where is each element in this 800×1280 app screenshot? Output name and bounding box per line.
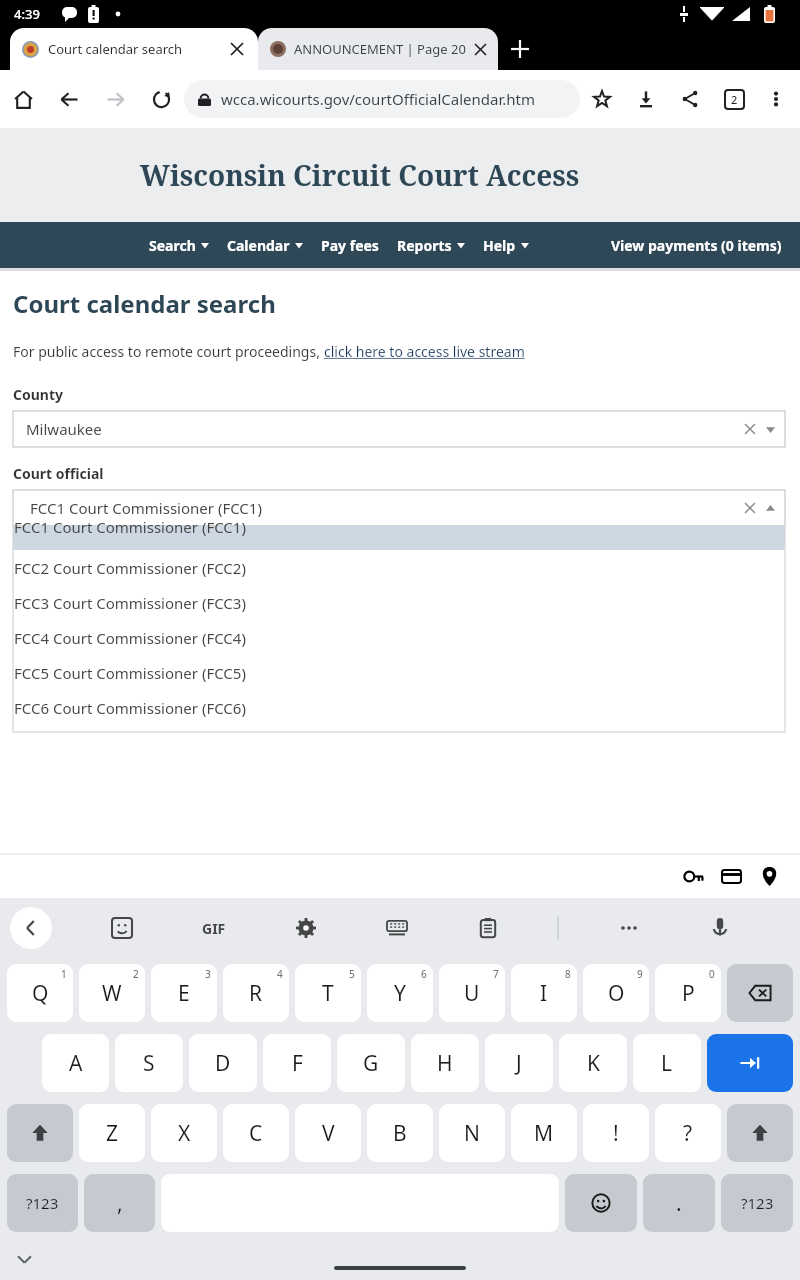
staticText: Help <box>483 236 516 255</box>
staticText: X <box>178 1119 191 1148</box>
button[interactable]: FCC5 Court Commissioner (FCC5) <box>13 655 785 690</box>
button[interactable]: View payments (0 items) <box>605 228 788 263</box>
button[interactable]: wcca.wicourts.gov/courtOfficialCalendar.… <box>184 80 580 118</box>
button[interactable]: Addresses <box>750 857 788 895</box>
button[interactable]: ! <box>583 1104 649 1162</box>
button[interactable]: Shift <box>727 1104 793 1162</box>
button[interactable]: Hide keyboard <box>8 1243 40 1275</box>
staticText: C <box>249 1119 263 1148</box>
staticText: I <box>540 979 548 1008</box>
button[interactable]: New tab <box>500 29 540 69</box>
button[interactable]: K <box>559 1034 627 1092</box>
button[interactable]: Search <box>140 227 218 264</box>
button[interactable]: Passwords <box>674 857 712 895</box>
staticText: For public access to remote court procee… <box>13 342 324 361</box>
button[interactable]: Settings <box>285 907 327 949</box>
staticText: . <box>676 1189 682 1218</box>
button[interactable]: D <box>189 1034 257 1092</box>
button[interactable]: Backspace <box>727 964 793 1022</box>
button[interactable]: Y <box>367 964 433 1022</box>
button[interactable]: U <box>439 964 505 1022</box>
button[interactable]: Court calendar search <box>10 28 258 70</box>
button[interactable]: P <box>655 964 721 1022</box>
staticText: , <box>117 1189 123 1218</box>
button[interactable]: Pay fees <box>312 227 388 264</box>
button[interactable]: R <box>223 964 289 1022</box>
button[interactable]: Next field <box>707 1034 793 1092</box>
button[interactable]: Home <box>0 76 46 122</box>
button[interactable]: Close tab <box>224 36 250 62</box>
button[interactable]: Payment methods <box>712 857 750 895</box>
button[interactable]: . <box>643 1174 715 1232</box>
button[interactable]: ANNOUNCEMENT | Page 20 <box>258 28 498 70</box>
staticText: 3 <box>205 967 211 981</box>
button[interactable]: GIF <box>192 906 236 950</box>
button[interactable]: Emoji <box>565 1174 637 1232</box>
button[interactable]: Q <box>7 964 73 1022</box>
button[interactable]: W <box>79 964 145 1022</box>
button[interactable]: FCC3 Court Commissioner (FCC3) <box>13 585 785 620</box>
button[interactable]: I <box>511 964 577 1022</box>
button[interactable]: FCC1 Court Commissioner (FCC1) <box>13 526 785 550</box>
button[interactable]: Shift <box>7 1104 73 1162</box>
button[interactable]: C <box>223 1104 289 1162</box>
button[interactable]: Help <box>474 227 538 264</box>
button[interactable]: T <box>295 964 361 1022</box>
button[interactable]: FCC6 Court Commissioner (FCC6) <box>13 690 785 725</box>
staticText: 9 <box>637 967 643 981</box>
staticText: 0 <box>709 967 715 981</box>
button[interactable]: Clipboard <box>467 907 509 949</box>
staticText: P <box>682 979 695 1008</box>
button[interactable]: FCC4 Court Commissioner (FCC4) <box>13 620 785 655</box>
staticText: J <box>516 1049 522 1078</box>
button[interactable]: ? <box>655 1104 721 1162</box>
button[interactable]: B <box>367 1104 433 1162</box>
button[interactable]: Download <box>624 77 668 121</box>
button[interactable]: A <box>42 1034 109 1092</box>
button[interactable]: Share <box>668 77 712 121</box>
button[interactable]: ?123 <box>721 1174 793 1232</box>
button[interactable]: F <box>263 1034 331 1092</box>
staticText: O <box>608 979 625 1008</box>
button[interactable]: G <box>337 1034 405 1092</box>
staticText: ANNOUNCEMENT | Page 20 <box>294 40 468 58</box>
button[interactable]: Bookmark <box>580 77 624 121</box>
button[interactable]: Reports <box>388 227 474 264</box>
staticText: View payments (0 items) <box>611 236 782 255</box>
button[interactable]: S <box>115 1034 183 1092</box>
button[interactable]: Voice input <box>699 907 741 949</box>
button[interactable]: Forward <box>92 76 138 122</box>
staticText: M <box>534 1119 554 1148</box>
button[interactable]: Stickers <box>101 907 143 949</box>
button[interactable]: J <box>485 1034 553 1092</box>
staticText: ! <box>613 1119 619 1148</box>
button[interactable]: Close tab <box>468 37 492 61</box>
button[interactable]: Expand toolbar <box>10 907 52 949</box>
button[interactable]: , <box>84 1174 155 1232</box>
button[interactable]: V <box>295 1104 361 1162</box>
button[interactable]: M <box>511 1104 577 1162</box>
button[interactable]: FCC1 Court Commissioner (FCC1) <box>13 490 785 526</box>
button[interactable]: Reload <box>138 76 184 122</box>
button[interactable]: ?123 <box>7 1174 78 1232</box>
button[interactable]: More <box>608 907 650 949</box>
staticText: FCC1 Court Commissioner (FCC1) <box>14 517 246 537</box>
staticText: FCC6 Court Commissioner (FCC6) <box>14 698 246 718</box>
button[interactable]: N <box>439 1104 505 1162</box>
button[interactable]: More options <box>756 79 796 119</box>
button[interactable]: Keyboard modes <box>376 907 418 949</box>
button[interactable]: Calendar <box>218 227 312 264</box>
button[interactable]: H <box>411 1034 479 1092</box>
button[interactable]: Milwaukee <box>13 411 785 447</box>
button[interactable]: Back <box>46 76 92 122</box>
button[interactable]: FCC2 Court Commissioner (FCC2) <box>13 550 785 585</box>
button[interactable]: Z <box>79 1104 145 1162</box>
staticText: L <box>661 1049 673 1078</box>
button[interactable]: L <box>633 1034 701 1092</box>
button[interactable]: O <box>583 964 649 1022</box>
button[interactable]: E <box>151 964 217 1022</box>
button[interactable]: Tabs <box>712 77 756 121</box>
button[interactable]: X <box>151 1104 217 1162</box>
button[interactable]: click here to access live stream <box>324 342 525 361</box>
